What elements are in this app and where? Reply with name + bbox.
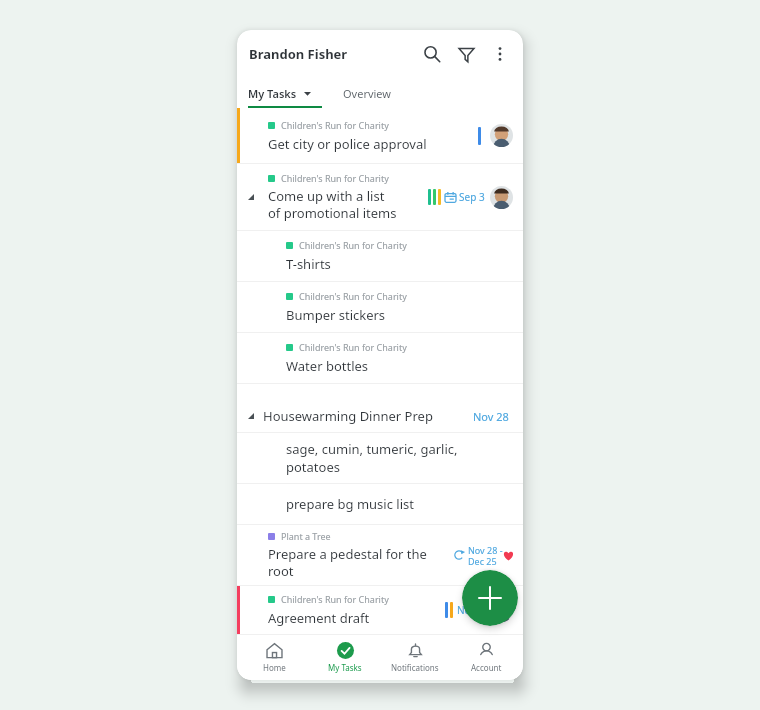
staticText: My Tasks (328, 662, 362, 673)
staticText: Bumper stickers (286, 306, 386, 324)
staticText: Children's Run for Charity (281, 119, 389, 131)
button[interactable]: sage, cumin, tumeric, garlic, potatoes (237, 433, 523, 483)
staticText: T-shirts (286, 255, 331, 273)
staticText: prepare bg music list (286, 495, 414, 513)
button[interactable]: Children's Run for Charity (237, 586, 523, 634)
button[interactable]: Add task (462, 570, 518, 626)
staticText: Nov 28 - Dec 25 (468, 544, 503, 567)
staticText: Housewarming Dinner Prep (263, 407, 433, 425)
staticText: Children's Run for Charity (281, 593, 389, 605)
staticText: Notifications (391, 662, 439, 673)
staticText: Account (471, 662, 502, 673)
staticText: Brandon Fisher (249, 45, 348, 63)
staticText: Sep 3 (459, 190, 485, 204)
staticText: Get city or police approval (268, 135, 427, 153)
button[interactable]: Children's Run for Charity (237, 282, 523, 332)
button[interactable]: Plant a Tree (237, 525, 523, 585)
staticText: sage, cumin, tumeric, garlic, potatoes (286, 440, 458, 476)
staticText: Plant a Tree (281, 530, 331, 542)
button[interactable]: Filter (449, 37, 483, 71)
button[interactable]: Account (453, 635, 519, 680)
button[interactable]: Overview (343, 86, 391, 101)
staticText: Prepare a pedestal for the root (268, 545, 427, 580)
button[interactable]: Children's Run for Charity (237, 333, 523, 383)
button[interactable]: Children's Run for Charity (237, 231, 523, 281)
staticText: Children's Run for Charity (299, 341, 407, 353)
button[interactable]: Children's Run for Charity (237, 164, 523, 230)
button[interactable]: More options (483, 37, 517, 71)
staticText: Children's Run for Charity (299, 239, 407, 251)
button[interactable]: prepare bg music list (237, 484, 523, 524)
staticText: Children's Run for Charity (281, 172, 389, 184)
staticText: Overview (343, 86, 391, 101)
staticText: Come up with a list of promotional items (268, 187, 397, 222)
button[interactable]: Notifications (382, 635, 448, 680)
staticText: My Tasks (248, 86, 297, 101)
staticText: Nov 28 (473, 409, 509, 424)
button[interactable]: My Tasks (312, 635, 378, 680)
staticText: Children's Run for Charity (299, 290, 407, 302)
button[interactable]: My Tasks (248, 86, 311, 101)
staticText: Nov 2 (457, 603, 484, 617)
button[interactable]: Search (415, 37, 449, 71)
button[interactable]: Home (241, 635, 307, 680)
button[interactable]: Housewarming Dinner Prep (237, 400, 523, 432)
button[interactable]: Children's Run for Charity (237, 108, 523, 163)
staticText: Home (263, 662, 286, 673)
staticText: Water bottles (286, 357, 369, 375)
staticText: Agreement draft (268, 609, 370, 627)
